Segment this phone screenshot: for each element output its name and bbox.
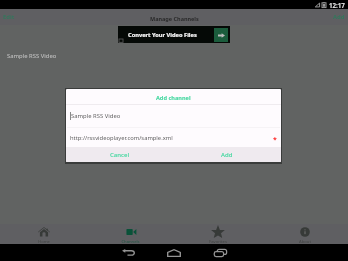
button[interactable]: Home [151,244,197,261]
staticText: Sample RSS Video [71,112,121,120]
staticText: Convert Your Video Files [128,31,197,39]
button[interactable]: Edit [0,10,20,24]
staticText: 12:17 [329,1,345,9]
button[interactable]: Cancel [66,147,173,162]
button[interactable]: Channels [87,224,174,244]
staticText: Edit [3,13,15,21]
button[interactable]: Recent apps [197,244,243,261]
button[interactable]: About [261,224,348,244]
staticText: Home [38,239,50,245]
staticText: Favorites [209,239,227,245]
staticText: Sample RSS Video [7,52,57,60]
button[interactable]: Add [173,147,281,162]
staticText: * [273,135,277,145]
staticText: Channels [121,239,140,245]
button[interactable]: Convert Your Video Files [118,26,230,43]
staticText: Add [221,151,233,159]
button[interactable]: Sample RSS Video [0,48,348,64]
staticText: Add channel [156,94,191,102]
staticText: About [299,239,311,245]
staticText: Add [333,13,345,21]
staticText: Cancel [110,151,130,159]
button[interactable]: Favorites [174,224,261,244]
button[interactable]: Home [0,224,87,244]
staticText: Manage Channels [150,15,199,22]
staticText: http://rssvideoplayer.com/sample.xml [70,134,173,142]
button[interactable]: Add [328,10,348,24]
button[interactable]: Back [105,244,151,261]
